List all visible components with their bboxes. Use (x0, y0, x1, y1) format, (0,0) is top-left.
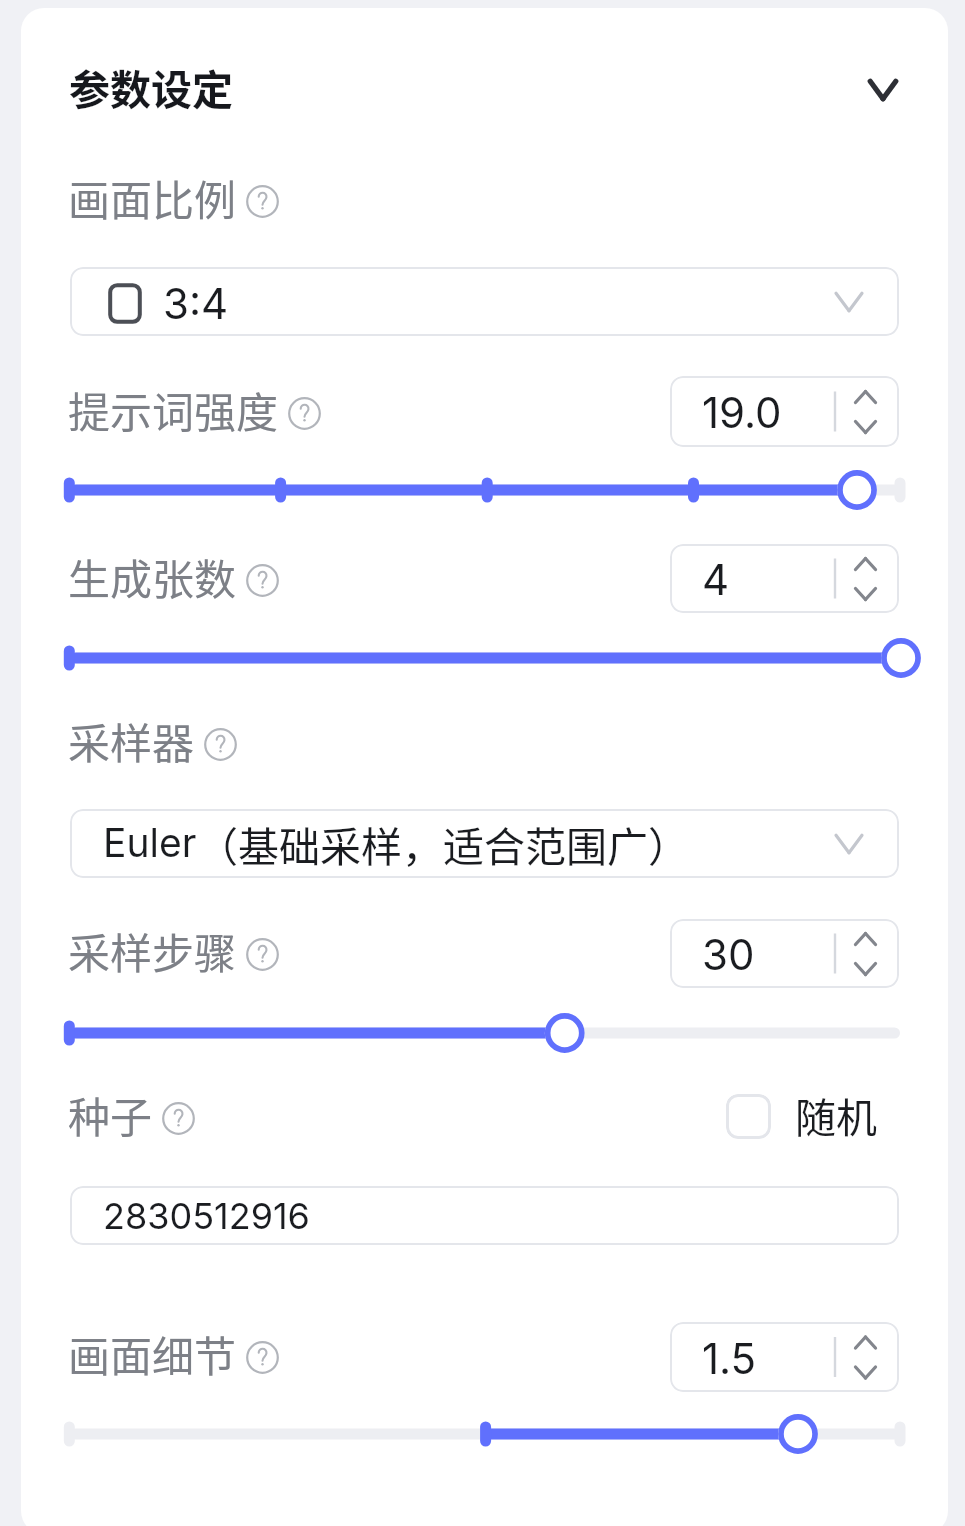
button[interactable]: Euler (70, 809, 899, 878)
button[interactable]: Adjust value (56, 1007, 914, 1059)
staticText: 采样步骤 (68, 920, 237, 981)
button[interactable]: 19.0 (670, 376, 899, 447)
staticText: 生成张数 (68, 546, 237, 607)
staticText: 19.0 (702, 387, 782, 438)
button[interactable]: Adjust value (56, 632, 914, 684)
staticText: 参数设定 (69, 57, 233, 116)
button[interactable]: Adjust value (56, 464, 914, 516)
staticText: 1.5 (702, 1333, 757, 1384)
staticText: 随机 (795, 1085, 877, 1144)
staticText: 采样器 (68, 710, 195, 771)
staticText: 提示词强度 (68, 379, 279, 440)
staticText: 画面细节 (68, 1323, 237, 1384)
staticText: 2830512916 (103, 1194, 310, 1238)
button[interactable]: 随机 (726, 1087, 877, 1146)
staticText: 画面比例 (68, 167, 237, 228)
staticText: 种子 (68, 1084, 153, 1145)
staticText: （基础采样，适合范围广） (197, 814, 689, 873)
staticText: Euler (103, 819, 197, 866)
button[interactable]: 4 (670, 544, 899, 613)
button[interactable]: 30 (670, 919, 899, 988)
staticText: 4 (702, 554, 730, 605)
button[interactable]: 2830512916 (70, 1186, 899, 1245)
button[interactable]: Collapse parameters (856, 63, 909, 116)
button[interactable]: 1.5 (670, 1322, 899, 1392)
button[interactable]: 3:4 (70, 267, 899, 336)
staticText: 30 (702, 929, 755, 980)
button[interactable]: Adjust value (56, 1408, 914, 1460)
staticText: 3:4 (163, 278, 229, 329)
